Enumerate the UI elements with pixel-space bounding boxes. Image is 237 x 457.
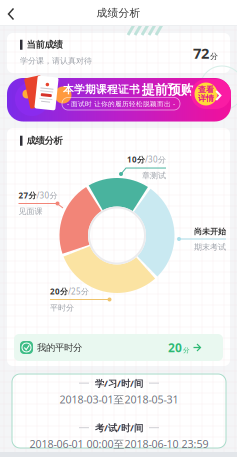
staticText: 详情 [198,93,214,103]
staticText: 成绩分析 [96,6,140,19]
staticText: 72 [193,43,209,63]
staticText: /30分 [145,154,166,165]
staticText: - 面试时 让你的履历轻松脱颖而出 - [67,99,175,108]
staticText: 2018-06-01 00:00至2018-06-10 23:59 [29,437,208,451]
staticText: 27分 [18,190,36,201]
staticText: 我的平时分 [37,342,82,353]
button[interactable]: Back [0,0,24,26]
staticText: 当前成绩 [26,39,62,50]
staticText: 尚未开始 [194,227,226,236]
staticText: /25分 [68,286,89,297]
button[interactable]: 我的平时分 [14,334,223,361]
staticText: 查看 [198,85,214,94]
staticText: 20分 [50,286,68,297]
staticText: 提前预购 [141,81,193,98]
staticText: 见面课 [18,206,42,216]
staticText: 20 [168,339,182,355]
staticText: 10分 [127,154,145,165]
staticText: 分 [183,346,190,354]
staticText: 2018-03-01至2018-05-31 [59,392,178,406]
staticText: 期末考试 [194,242,226,252]
staticText: 成绩分析 [26,135,62,146]
staticText: 平时分 [50,303,74,313]
staticText: 分 [210,51,218,61]
staticText: /30分 [36,190,57,201]
staticText: 本学期课程证书 [63,83,140,96]
staticText: 学/习/时/间 [95,377,143,389]
staticText: 章测试 [142,171,166,180]
staticText: 学分课，请认真对待 [20,56,92,66]
button[interactable]: 本学期课程证书 [7,78,231,121]
staticText: 考/试/时/间 [95,421,143,434]
